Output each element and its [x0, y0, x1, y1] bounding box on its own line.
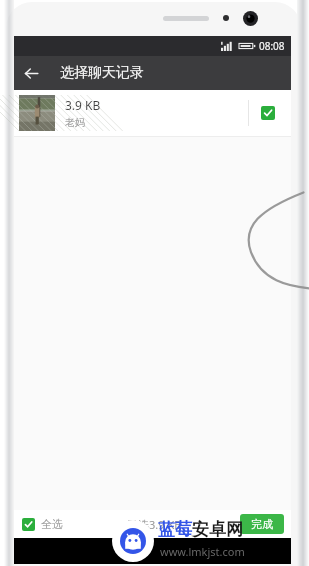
button[interactable]: 全选 [14, 517, 69, 531]
staticText: www.lmkjst.com [160, 544, 245, 559]
staticText: 3.9 KB [65, 97, 101, 113]
staticText: 选择聊天记录 [60, 64, 144, 82]
button[interactable]: 完成 [240, 514, 284, 534]
button[interactable]: 3.9 KB [14, 90, 291, 136]
staticText: 全选 [41, 517, 63, 531]
staticText: 老妈 [65, 116, 85, 129]
button[interactable]: Back [126, 538, 152, 564]
button[interactable]: Back [14, 56, 48, 90]
staticText: 安卓网 [192, 519, 243, 540]
staticText: 蓝莓 [158, 519, 192, 540]
button[interactable]: Selected [249, 90, 287, 136]
staticText: 已选3.9 KB [127, 517, 182, 532]
staticText: 完成 [251, 517, 273, 531]
staticText: 08:08 [259, 39, 285, 53]
